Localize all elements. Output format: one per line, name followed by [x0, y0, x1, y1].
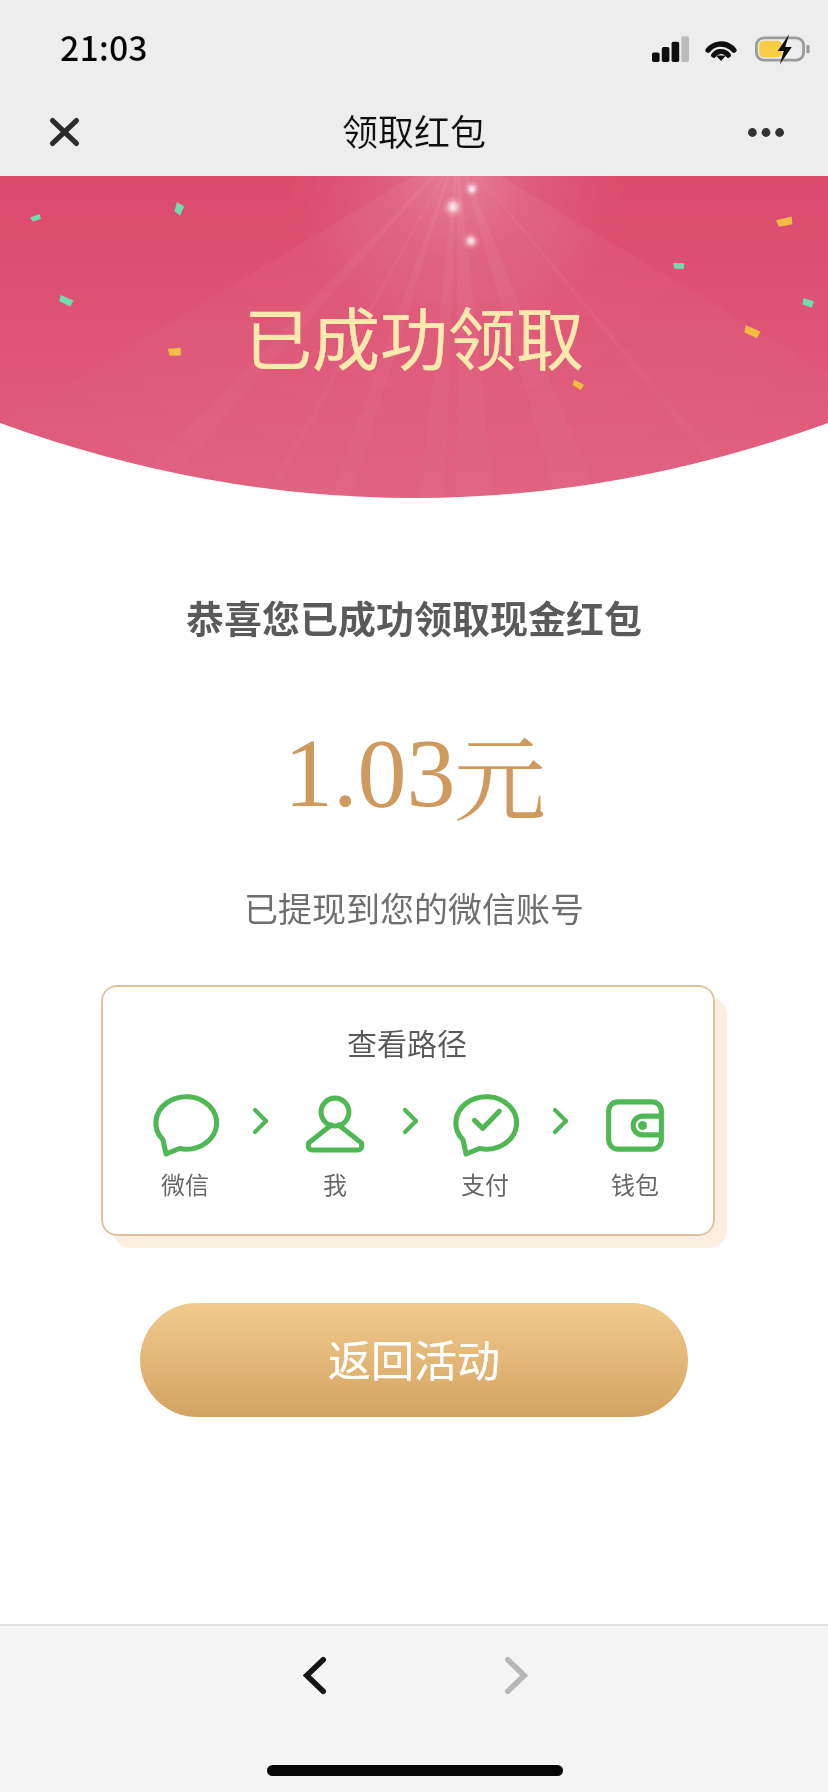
- staticText: 微信: [161, 1166, 209, 1201]
- button[interactable]: 我: [290, 1097, 380, 1201]
- staticText: 1.03: [284, 719, 456, 828]
- staticText: 查看路径: [347, 1020, 467, 1063]
- staticText: 21:03: [60, 22, 148, 71]
- staticText: 元: [454, 707, 547, 839]
- staticText: 领取红包: [342, 104, 487, 156]
- button[interactable]: More options: [722, 88, 810, 176]
- button[interactable]: Close: [20, 88, 108, 176]
- staticText: 恭喜您已成功领取现金红包: [186, 589, 643, 644]
- staticText: 返回活动: [328, 1327, 500, 1389]
- button[interactable]: 支付: [440, 1097, 530, 1201]
- button[interactable]: 钱包: [590, 1097, 680, 1201]
- button[interactable]: Forward: [468, 1627, 564, 1723]
- staticText: 已成功领取: [244, 286, 585, 384]
- staticText: 我: [323, 1166, 347, 1201]
- staticText: 已提现到您的微信账号: [244, 883, 584, 932]
- staticText: 支付: [461, 1166, 509, 1201]
- staticText: 钱包: [611, 1166, 659, 1201]
- button[interactable]: Back: [267, 1627, 363, 1723]
- button[interactable]: 返回活动: [140, 1303, 688, 1417]
- button[interactable]: 微信: [140, 1097, 230, 1201]
